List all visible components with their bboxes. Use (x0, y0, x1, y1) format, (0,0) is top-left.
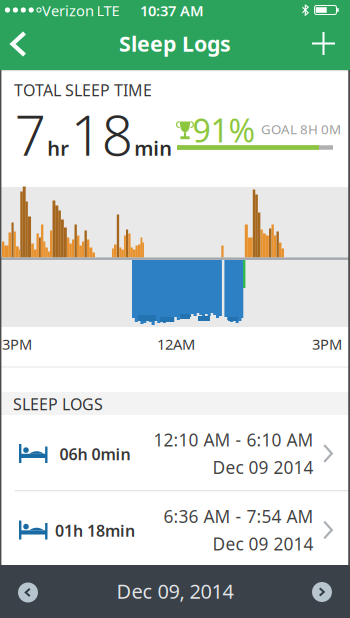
staticText: 7 (15, 98, 46, 171)
staticText: 12AM (157, 334, 195, 354)
staticText: 18 (71, 98, 133, 171)
staticText: Dec 09 2014 (212, 532, 313, 555)
button[interactable]: Back (8, 30, 29, 58)
button[interactable]: Previous day (13, 577, 43, 607)
button[interactable]: 06h 0min (0, 415, 350, 491)
staticText: LTE (96, 1, 119, 20)
staticText: hr (47, 135, 69, 161)
button[interactable]: 01h 18min (0, 491, 350, 565)
staticText: 3PM (2, 334, 32, 354)
staticText: 12:10 AM - 6:10 AM (153, 428, 313, 451)
button[interactable]: Next day (307, 577, 337, 607)
staticText: Sleep Logs (119, 29, 231, 58)
staticText: 01h 18min (55, 520, 135, 541)
staticText: 3PM (312, 334, 342, 354)
staticText: TOTAL SLEEP TIME (14, 79, 152, 101)
staticText: Verizon (42, 1, 94, 20)
button[interactable]: Add sleep log (309, 29, 337, 57)
staticText: 6:36 AM - 7:54 AM (163, 505, 313, 528)
staticText: 06h 0min (59, 443, 130, 465)
staticText: Dec 09 2014 (212, 456, 313, 479)
staticText: 91% (192, 109, 255, 151)
staticText: GOAL 8H 0M (261, 120, 341, 138)
staticText: min (134, 135, 172, 161)
staticText: 10:37 AM (140, 1, 204, 20)
staticText: SLEEP LOGS (13, 393, 103, 415)
staticText: Dec 09, 2014 (116, 578, 233, 604)
